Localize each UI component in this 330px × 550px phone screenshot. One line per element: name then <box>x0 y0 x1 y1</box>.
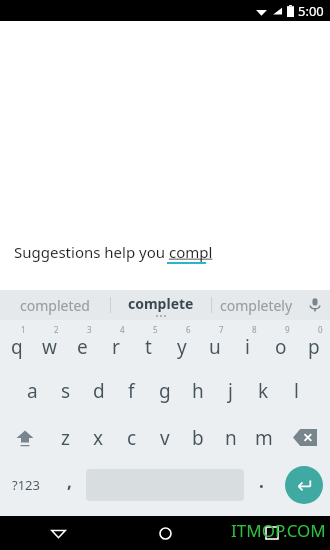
button[interactable]: . <box>244 461 278 509</box>
staticText: k <box>258 378 269 404</box>
button[interactable]: n <box>214 414 247 461</box>
staticText: 1 <box>21 324 26 335</box>
button[interactable]: q <box>0 320 33 367</box>
button[interactable]: r <box>99 320 132 367</box>
staticText: 2 <box>54 324 59 335</box>
staticText: m <box>255 425 273 451</box>
button[interactable]: complete <box>111 290 211 320</box>
button[interactable]: Home <box>147 516 183 550</box>
button[interactable]: x <box>82 414 115 461</box>
staticText: d <box>93 378 105 404</box>
staticText: c <box>127 425 137 451</box>
button[interactable]: i <box>231 320 264 367</box>
button[interactable]: Backspace <box>280 414 330 461</box>
staticText: i <box>245 334 250 360</box>
staticText: w <box>42 334 57 360</box>
staticText: 6 <box>186 324 191 335</box>
staticText: j <box>228 378 233 404</box>
button[interactable]: w <box>33 320 66 367</box>
button[interactable]: completely <box>212 290 300 320</box>
staticText: t <box>145 334 152 360</box>
staticText: e <box>77 334 88 360</box>
button[interactable]: g <box>148 367 181 414</box>
button[interactable]: Shift <box>0 414 49 461</box>
staticText: . <box>259 470 264 493</box>
button[interactable]: a <box>16 367 49 414</box>
staticText: 8 <box>252 324 257 335</box>
staticText: h <box>192 378 204 404</box>
staticText: a <box>27 378 38 404</box>
button[interactable]: h <box>181 367 214 414</box>
staticText: 0 <box>318 324 323 335</box>
staticText: ?123 <box>12 476 40 494</box>
button[interactable]: l <box>280 367 313 414</box>
button[interactable]: , <box>52 461 86 509</box>
button[interactable]: t <box>132 320 165 367</box>
staticText: 3 <box>87 324 92 335</box>
button[interactable]: ?123 <box>0 461 52 509</box>
staticText: f <box>128 378 135 404</box>
button[interactable]: Back <box>40 516 76 550</box>
button[interactable]: c <box>115 414 148 461</box>
button[interactable]: b <box>181 414 214 461</box>
button[interactable]: v <box>148 414 181 461</box>
staticText: l <box>294 378 299 404</box>
button[interactable]: Enter <box>285 466 323 504</box>
staticText: p <box>308 334 320 360</box>
button[interactable]: y <box>165 320 198 367</box>
staticText: q <box>11 334 23 360</box>
button[interactable]: k <box>247 367 280 414</box>
button[interactable]: o <box>264 320 297 367</box>
button[interactable]: Voice input <box>300 290 330 320</box>
button[interactable]: j <box>214 367 247 414</box>
staticText: complete <box>128 294 194 313</box>
button[interactable]: completed <box>0 290 110 320</box>
staticText: s <box>61 378 71 404</box>
staticText: v <box>160 425 170 451</box>
staticText: 5:00 <box>298 2 324 20</box>
staticText: r <box>112 334 120 360</box>
staticText: completely <box>220 296 293 315</box>
staticText: Suggestions help you compl <box>14 242 213 262</box>
button[interactable]: d <box>82 367 115 414</box>
staticText: y <box>177 334 187 360</box>
button[interactable]: e <box>66 320 99 367</box>
button[interactable]: s <box>49 367 82 414</box>
staticText: o <box>275 334 287 360</box>
button[interactable]: z <box>49 414 82 461</box>
staticText: 4 <box>120 324 125 335</box>
staticText: g <box>159 378 171 404</box>
staticText: ITMOP.COM <box>231 519 326 542</box>
button[interactable]: p <box>297 320 330 367</box>
button[interactable]: u <box>198 320 231 367</box>
staticText: z <box>61 425 70 451</box>
staticText: x <box>93 425 104 451</box>
staticText: u <box>209 334 221 360</box>
staticText: n <box>225 425 237 451</box>
button[interactable]: f <box>115 367 148 414</box>
staticText: , <box>67 470 72 493</box>
button[interactable]: Recents <box>254 516 290 550</box>
staticText: b <box>192 425 204 451</box>
staticText: completed <box>20 296 90 315</box>
button[interactable]: m <box>247 414 280 461</box>
staticText: 7 <box>219 324 224 335</box>
staticText: 9 <box>285 324 290 335</box>
staticText: 5 <box>153 324 158 335</box>
